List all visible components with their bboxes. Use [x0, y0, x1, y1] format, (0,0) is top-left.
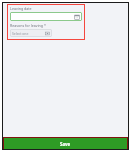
button[interactable]: Select one: [10, 29, 52, 37]
button[interactable]: Save: [4, 138, 127, 149]
staticText: Save: [60, 141, 71, 147]
button[interactable]: Open calendar: [10, 12, 82, 21]
staticText: Leaving date: [10, 6, 32, 11]
button[interactable]: Open calendar: [74, 14, 80, 20]
staticText: Reasons for leaving *: [10, 23, 46, 28]
staticText: Select one: [12, 31, 29, 36]
